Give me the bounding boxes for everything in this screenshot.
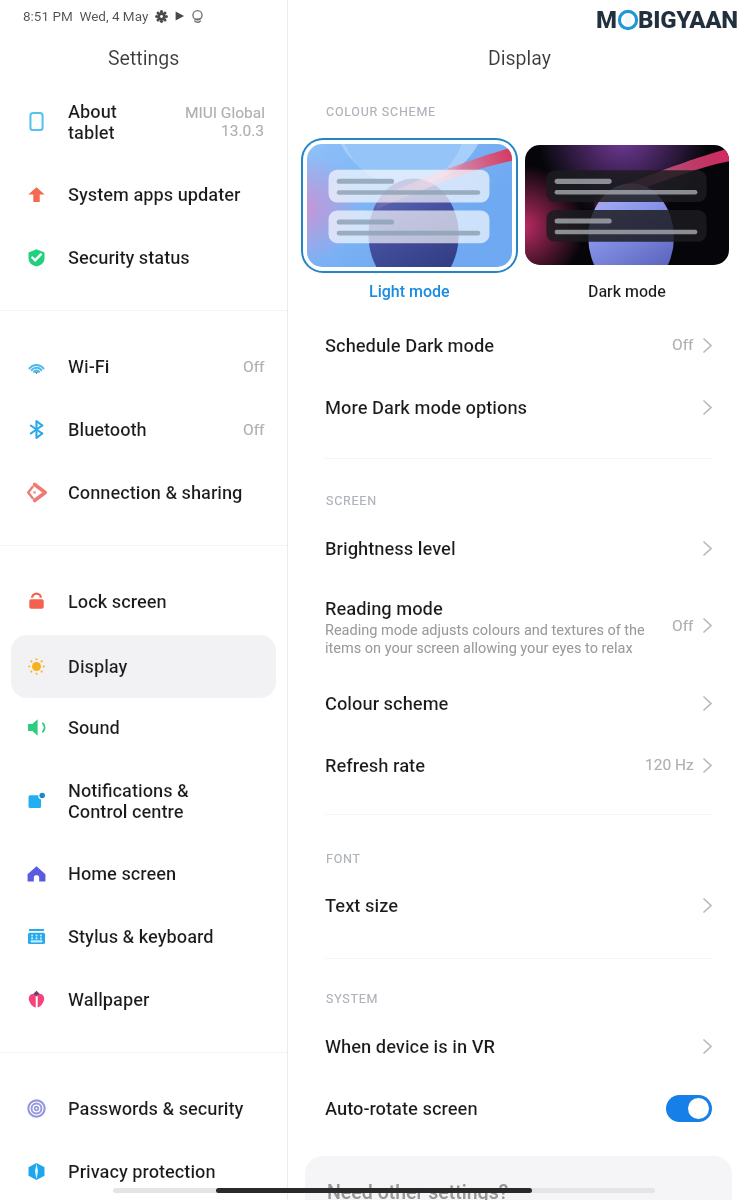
staticText: Reading mode adjusts colours and texture… [325, 622, 645, 656]
button[interactable]: Display [11, 635, 276, 698]
button[interactable]: Text size [288, 874, 750, 936]
staticText: Home screen [68, 863, 177, 884]
button[interactable]: Connection & sharing [11, 461, 276, 524]
button[interactable]: System apps updater [11, 163, 276, 226]
staticText: Dark mode [588, 282, 666, 301]
staticText: COLOUR SCHEME [326, 104, 436, 119]
staticText: System apps updater [68, 184, 241, 205]
button[interactable]: Wallpaper [11, 968, 276, 1031]
staticText: 8:51 PM Wed, 4 May [23, 8, 149, 24]
button[interactable]: Brightness level [288, 517, 750, 579]
staticText: Settings [108, 47, 180, 70]
button[interactable]: Notifications & Control centre [11, 759, 276, 842]
button[interactable]: Passwords & security [11, 1077, 276, 1140]
button[interactable]: Home screen [11, 842, 276, 905]
button[interactable]: Wi-Fi [11, 335, 276, 398]
staticText: MIUI Global [185, 104, 265, 122]
staticText: Bluetooth [68, 419, 147, 440]
staticText: Off [672, 336, 694, 354]
staticText: FONT [326, 851, 361, 866]
staticText: Light mode [369, 282, 450, 301]
button[interactable]: More Dark mode options [288, 376, 750, 438]
staticText: SYSTEM [326, 991, 379, 1006]
staticText: Display [488, 47, 551, 70]
staticText: SCREEN [326, 493, 377, 508]
button[interactable]: Sound [11, 696, 276, 759]
staticText: Refresh rate [325, 755, 425, 776]
staticText: Stylus & keyboard [68, 926, 214, 947]
button[interactable]: Security status [11, 226, 276, 289]
staticText: Colour scheme [325, 693, 449, 714]
staticText: Auto-rotate screen [325, 1098, 478, 1119]
staticText: Display [68, 656, 128, 677]
button[interactable]: Auto-rotate screen [288, 1077, 750, 1139]
button[interactable]: When device is in VR [288, 1015, 750, 1077]
button[interactable]: About tablet [11, 80, 276, 163]
staticText: Wi-Fi [68, 356, 110, 377]
staticText: Sound [68, 717, 120, 738]
staticText: 13.0.3 [221, 122, 265, 140]
staticText: Passwords & security [68, 1098, 244, 1119]
button[interactable] [525, 145, 729, 265]
button[interactable]: Reading mode [288, 579, 750, 672]
staticText: Brightness level [325, 538, 456, 559]
staticText: Text size [325, 895, 399, 916]
button[interactable]: Lock screen [11, 570, 276, 633]
button[interactable]: Need other settings? [305, 1156, 732, 1200]
staticText: M [596, 6, 618, 34]
staticText: Need other settings? [327, 1181, 509, 1200]
button[interactable] [307, 144, 512, 267]
button[interactable]: Auto-rotate screen toggle, on [666, 1095, 712, 1122]
staticText: Security status [68, 247, 190, 268]
staticText: Off [243, 421, 265, 439]
staticText: Schedule Dark mode [325, 335, 495, 356]
staticText: Reading mode [325, 598, 443, 619]
button[interactable]: Schedule Dark mode [288, 314, 750, 376]
staticText: Connection & sharing [68, 482, 243, 503]
button[interactable]: Bluetooth [11, 398, 276, 461]
staticText: When device is in VR [325, 1036, 495, 1057]
staticText: Wallpaper [68, 989, 150, 1010]
staticText: BIGYAAN [638, 6, 738, 34]
staticText: 120 Hz [645, 756, 694, 774]
button[interactable]: Stylus & keyboard [11, 905, 276, 968]
staticText: Off [243, 358, 265, 376]
button[interactable]: Privacy protection [11, 1140, 276, 1200]
staticText: Notifications & Control centre [68, 780, 189, 822]
staticText: Privacy protection [68, 1161, 216, 1182]
button[interactable]: Colour scheme [288, 672, 750, 734]
staticText: About tablet [68, 101, 117, 143]
staticText: Lock screen [68, 591, 167, 612]
staticText: More Dark mode options [325, 397, 528, 418]
button[interactable]: Refresh rate [288, 734, 750, 796]
staticText: Off [672, 617, 694, 635]
